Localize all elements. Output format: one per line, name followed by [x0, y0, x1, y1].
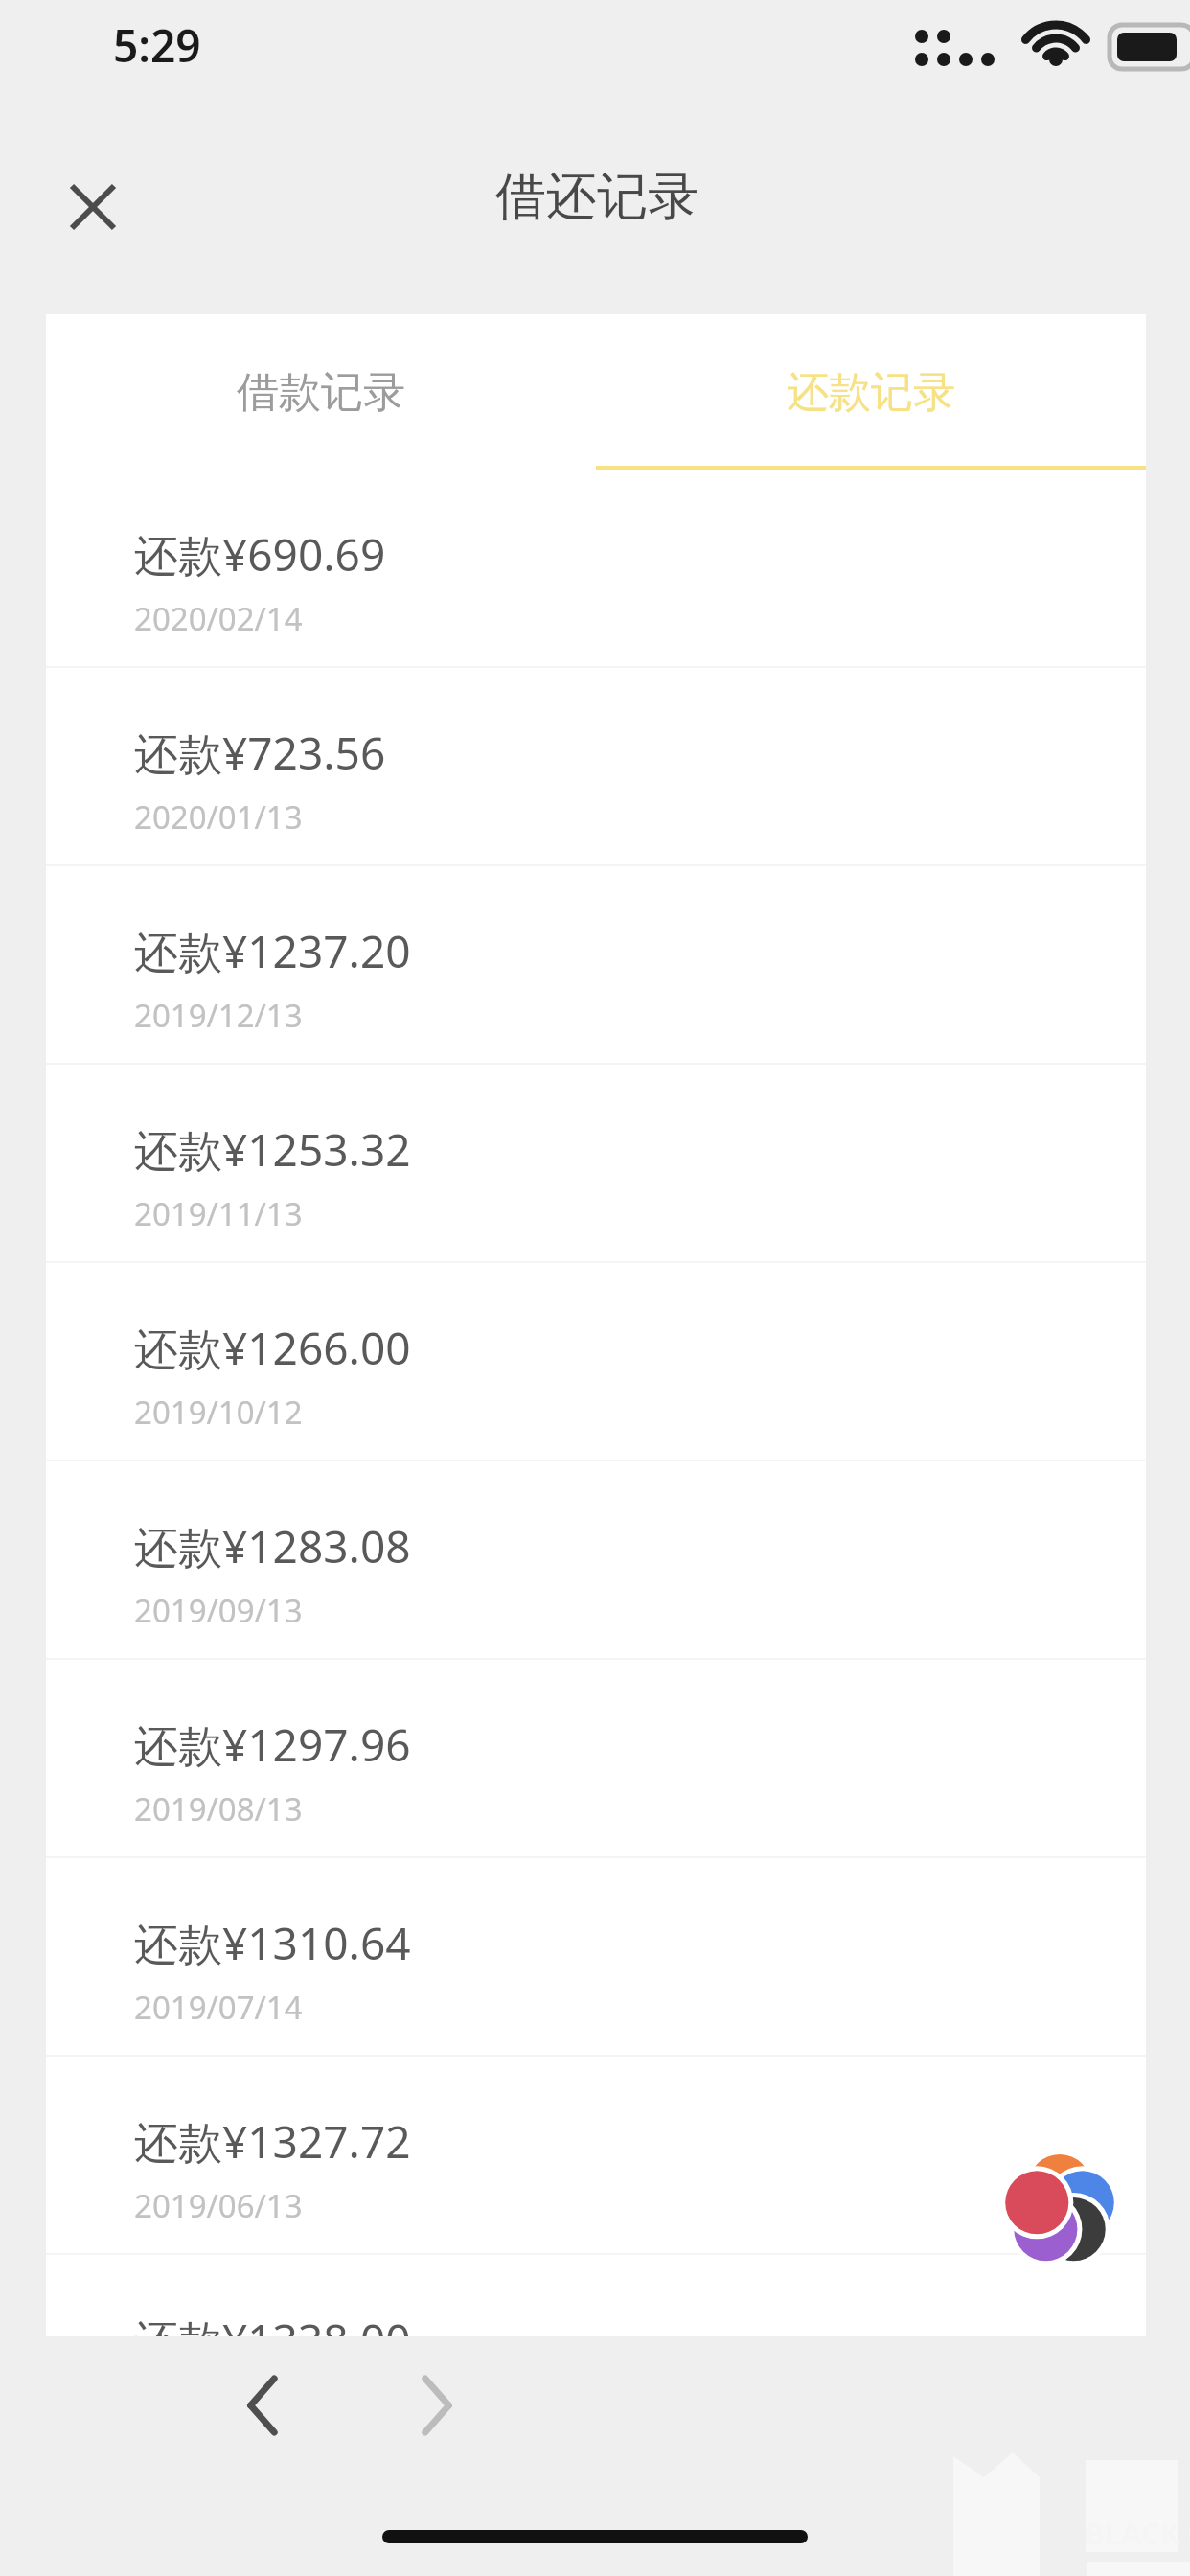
staticText: 2019/12/13 — [134, 994, 303, 1037]
button[interactable]: Forward — [378, 2348, 493, 2463]
staticText: 2020/02/14 — [134, 597, 303, 640]
staticText: 还款¥1237.20 — [134, 921, 411, 981]
staticText: 还款¥1253.32 — [134, 1119, 411, 1180]
staticText: 借款记录 — [237, 366, 405, 419]
button[interactable]: 还款记录 — [596, 314, 1146, 470]
button[interactable]: Back — [206, 2348, 321, 2463]
staticText: 还款¥690.69 — [134, 524, 386, 585]
button[interactable]: 还款¥1253.32 — [46, 1065, 1146, 1261]
button[interactable]: 还款¥1237.20 — [46, 866, 1146, 1063]
staticText: 还款¥1310.64 — [134, 1913, 411, 1973]
staticText: 2019/06/13 — [134, 2184, 303, 2227]
staticText: 还款¥1283.08 — [134, 1516, 411, 1576]
staticText: 2019/08/13 — [134, 1787, 303, 1830]
button[interactable]: 还款¥1283.08 — [46, 1461, 1146, 1658]
button[interactable]: 还款¥1327.72 — [46, 2057, 1146, 2253]
staticText: 还款¥1266.00 — [134, 1318, 411, 1378]
button[interactable]: 借款记录 — [46, 314, 596, 470]
button[interactable]: 还款¥1297.96 — [46, 1660, 1146, 1856]
staticText: 2020/01/13 — [134, 795, 303, 839]
staticText: 借还记录 — [495, 165, 698, 229]
button[interactable]: 还款¥723.56 — [46, 668, 1146, 864]
button[interactable]: Close — [44, 158, 142, 256]
staticText: 还款¥723.56 — [134, 723, 386, 783]
button[interactable]: 还款¥1310.64 — [46, 1858, 1146, 2055]
button[interactable]: 还款¥1266.00 — [46, 1263, 1146, 1460]
staticText: 还款¥1338.00 — [134, 2310, 411, 2336]
staticText: 2019/11/13 — [134, 1192, 303, 1235]
button[interactable]: 还款¥1338.00 — [46, 2255, 1146, 2336]
staticText: 2019/07/14 — [134, 1986, 303, 2029]
staticText: 还款¥1297.96 — [134, 1714, 411, 1775]
staticText: 还款¥1327.72 — [134, 2111, 411, 2172]
staticText: 还款记录 — [787, 366, 955, 419]
staticText: 2019/09/13 — [134, 1589, 303, 1632]
staticText: 2019/10/12 — [134, 1391, 303, 1434]
button[interactable]: 还款¥690.69 — [46, 470, 1146, 666]
staticText: 5:29 — [113, 15, 201, 76]
